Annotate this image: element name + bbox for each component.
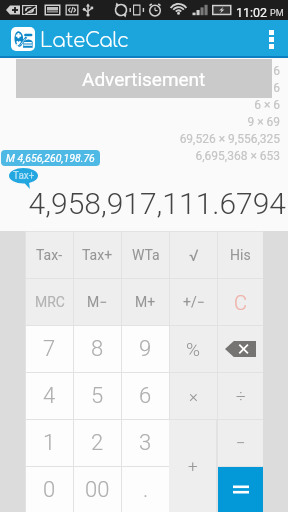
staticText: 2,653,869 × 6 [208, 81, 280, 95]
button[interactable]: C [218, 279, 263, 325]
button[interactable]: 0 [26, 467, 73, 512]
staticText: 9 [139, 336, 152, 362]
staticText: √ [189, 246, 199, 265]
button[interactable]: M 4,656,260,198.76 [1, 150, 100, 166]
button[interactable]: 6 [122, 373, 169, 419]
button[interactable]: MRC [26, 279, 73, 325]
staticText: MRC [35, 294, 65, 310]
staticText: WTa [132, 247, 160, 263]
button[interactable]: His [218, 232, 263, 278]
staticText: 4,958,917,111.6794 [28, 186, 286, 221]
button[interactable]: Tax- [26, 232, 73, 278]
staticText: . [143, 477, 149, 503]
staticText: Tax- [36, 247, 63, 263]
button[interactable]: × [170, 373, 217, 419]
staticText: 2 [91, 430, 104, 456]
staticText: 69,526 × 9,556,325 [179, 132, 280, 146]
button[interactable]: 8 [74, 326, 121, 372]
button[interactable]: M+ [122, 279, 169, 325]
staticText: +/− [183, 294, 205, 310]
button[interactable]: +/− [170, 279, 217, 325]
button[interactable]: 4 [26, 373, 73, 419]
button[interactable]: Tax+ [74, 232, 121, 278]
button[interactable]: M− [74, 279, 121, 325]
staticText: 9,556,325 × 6 [208, 64, 280, 78]
button[interactable]: 00 [74, 467, 121, 512]
staticText: Advertisement [82, 68, 206, 90]
staticText: × [189, 386, 198, 406]
staticText: M+ [135, 294, 156, 310]
button[interactable]: More options [254, 20, 288, 58]
button[interactable]: Backspace [218, 326, 263, 372]
button[interactable]: 3 [122, 420, 169, 466]
button[interactable]: − [218, 420, 263, 466]
button[interactable]: √ [170, 232, 217, 278]
button[interactable]: Plus [169, 420, 216, 512]
staticText: 3 [139, 430, 152, 456]
staticText: 4 [43, 383, 56, 409]
button[interactable]: ÷ [218, 373, 263, 419]
staticText: 11:02 [236, 5, 268, 20]
button[interactable]: Equals [218, 467, 263, 512]
staticText: M 4,656,260,198.76 [6, 152, 95, 164]
staticText: Tax+ [13, 170, 35, 182]
staticText: 9 × 69 [247, 115, 280, 129]
staticText: PM [270, 8, 284, 19]
staticText: + [188, 456, 198, 476]
button[interactable]: 1 [26, 420, 73, 466]
staticText: M− [87, 294, 108, 310]
staticText: 00 [85, 477, 110, 503]
staticText: ÷ [236, 386, 246, 406]
staticText: 8 [91, 336, 104, 362]
staticText: 1 [43, 430, 56, 456]
staticText: 5 [91, 383, 104, 409]
staticText: 7 [43, 336, 56, 362]
staticText: C [234, 291, 247, 314]
staticText: % [186, 338, 201, 360]
button[interactable]: WTa [122, 232, 169, 278]
staticText: LateCalc [40, 30, 129, 52]
staticText: 0 [43, 477, 56, 503]
staticText: 6 × 6 [254, 98, 280, 112]
button[interactable]: 5 [74, 373, 121, 419]
button[interactable]: 2 [74, 420, 121, 466]
button[interactable]: 9 [122, 326, 169, 372]
staticText: − [236, 433, 246, 453]
button[interactable]: 7 [26, 326, 73, 372]
staticText: 6 [139, 383, 152, 409]
button[interactable]: Tax+ [9, 168, 38, 189]
button[interactable]: % [170, 326, 217, 372]
staticText: Tax+ [82, 247, 113, 263]
staticText: 6,695,368 × 653 [195, 149, 280, 163]
button[interactable]: Advertisement [16, 59, 272, 98]
staticText: His [230, 247, 251, 263]
